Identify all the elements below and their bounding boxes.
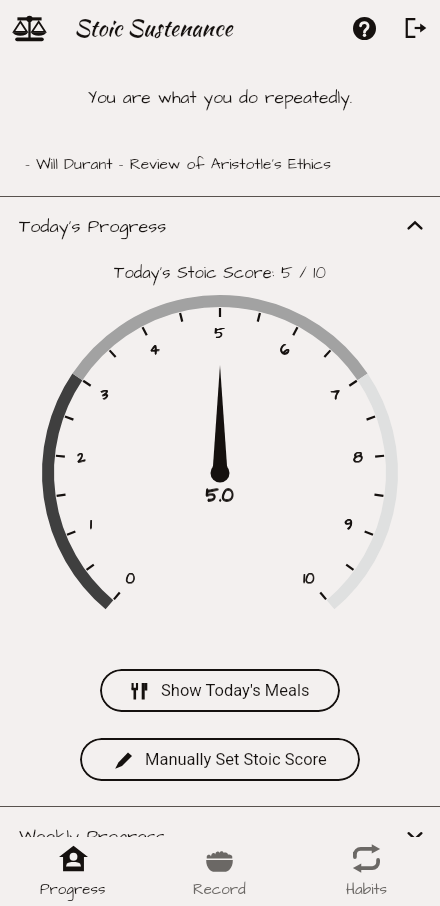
staticText: Record <box>193 879 246 900</box>
staticText: Today's Stoic Score: 5 / 10 <box>0 262 440 285</box>
button[interactable]: Habits <box>293 837 440 906</box>
button[interactable]: Manually Set Stoic Score <box>80 738 360 781</box>
staticText: Weekly Progress <box>19 824 165 849</box>
button[interactable]: Record <box>146 837 293 906</box>
staticText: - Will Durant - Review of Aristotle's Et… <box>25 154 440 176</box>
button[interactable]: Help <box>344 8 384 48</box>
button[interactable]: Weekly Progress <box>0 810 440 862</box>
staticText: Progress <box>40 879 106 900</box>
button[interactable]: Scales logo <box>9 8 49 48</box>
staticText: Manually Set Stoic Score <box>145 750 327 769</box>
staticText: Show Today's Meals <box>161 681 310 700</box>
button[interactable]: Log out <box>396 8 436 48</box>
staticText: You are what you do repeatedly. <box>0 86 440 110</box>
button[interactable]: Show Today's Meals <box>100 669 340 712</box>
staticText: Today's Progress <box>19 214 167 239</box>
staticText: Stoic Sustenance <box>74 12 233 45</box>
button[interactable]: Today's Progress <box>0 200 440 252</box>
staticText: Habits <box>346 879 388 900</box>
button[interactable]: Progress <box>0 837 146 906</box>
